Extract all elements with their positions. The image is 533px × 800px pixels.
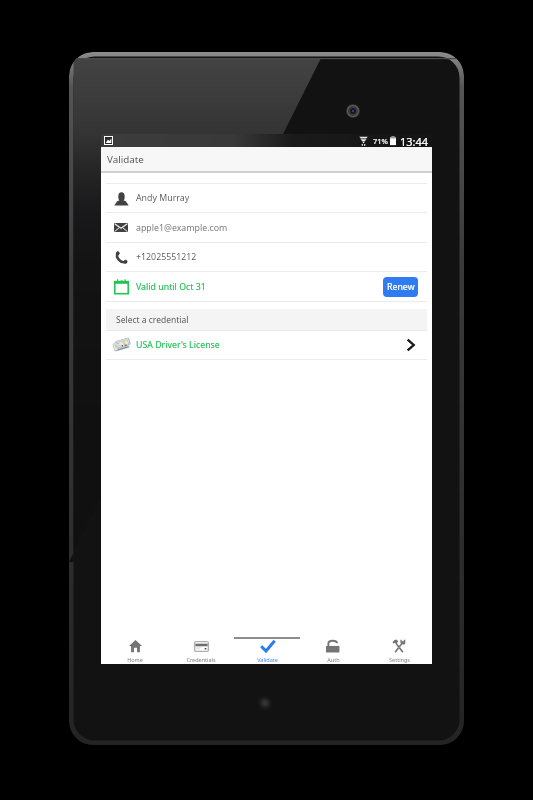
- button[interactable]: apple1@example.com: [106, 213, 427, 242]
- staticText: Select a credential: [116, 314, 189, 326]
- button[interactable]: +12025551212: [106, 243, 427, 271]
- staticText: USA Driver's License: [136, 339, 220, 351]
- button[interactable]: Renew: [383, 277, 418, 297]
- staticText: Auth: [327, 656, 340, 663]
- button[interactable]: Settings: [366, 630, 432, 664]
- button[interactable]: Credentials: [168, 630, 234, 664]
- staticText: 71%: [373, 136, 388, 146]
- button[interactable]: Select a credential: [106, 309, 427, 330]
- button[interactable]: Home: [101, 630, 168, 664]
- button[interactable]: Andy Murray: [106, 184, 427, 212]
- staticText: Home: [127, 656, 143, 663]
- staticText: Credentials: [186, 656, 216, 663]
- staticText: apple1@example.com: [136, 222, 228, 234]
- staticText: Validate: [107, 153, 144, 166]
- button[interactable]: Validate: [234, 630, 300, 664]
- staticText: 13:44: [400, 134, 429, 147]
- staticText: Renew: [387, 281, 415, 293]
- staticText: +12025551212: [136, 251, 197, 263]
- staticText: Valid until Oct 31: [136, 281, 206, 293]
- staticText: Settings: [389, 656, 410, 663]
- button[interactable]: USA Driver's License: [106, 331, 427, 359]
- staticText: Validate: [257, 656, 278, 663]
- staticText: Andy Murray: [136, 192, 190, 204]
- button[interactable]: Auth: [300, 630, 366, 664]
- button[interactable]: Valid until Oct 31: [106, 272, 427, 301]
